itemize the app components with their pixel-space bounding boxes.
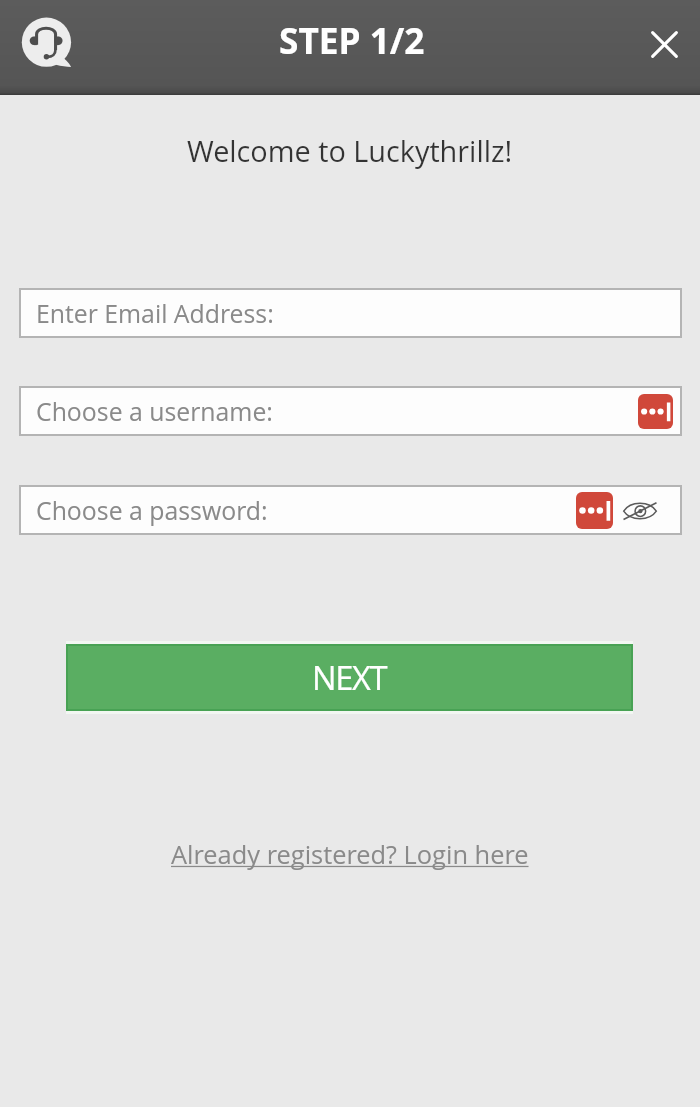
button[interactable]: Choose a username: [19, 386, 682, 436]
button[interactable]: Enter Email Address: [19, 288, 682, 338]
staticText: Enter Email Address: [36, 296, 274, 330]
staticText: Choose a password: [36, 493, 268, 527]
button[interactable]: LastPass autofill [576, 492, 613, 529]
button[interactable]: Customer support [21, 17, 74, 70]
staticText: STEP 1/2 [279, 16, 425, 64]
staticText: Welcome to Luckythrillz! [187, 131, 513, 170]
staticText: NEXT [312, 655, 387, 699]
button[interactable]: LastPass autofill [638, 394, 673, 429]
button[interactable]: Close [640, 20, 689, 69]
staticText: Choose a username: [36, 394, 273, 428]
button[interactable]: Choose a password: [19, 485, 682, 535]
button[interactable]: Already registered? Login here [171, 837, 529, 872]
button[interactable]: NEXT [66, 644, 633, 711]
staticText: Already registered? Login here [171, 837, 529, 872]
button[interactable]: Show password [622, 493, 657, 528]
